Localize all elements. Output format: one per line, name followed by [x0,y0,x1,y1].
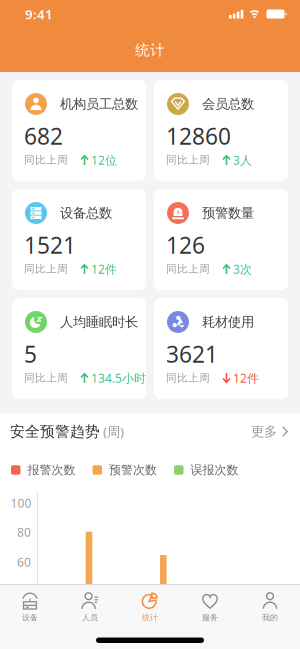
staticText: 误报次数 [190,463,238,477]
staticText: 134.5小时 [91,370,146,386]
staticText: 同比上周 [24,153,68,167]
staticText: 同比上周 [166,153,210,167]
staticText: 12860 [166,121,231,151]
staticText: 60 [17,554,31,570]
staticText: 100 [10,495,31,511]
staticText: 我的 [262,613,278,622]
staticText: 安全预警趋势 [10,422,100,440]
button[interactable]: 预警数量 [154,189,288,290]
staticText: 3次 [233,261,252,277]
staticText: 126 [166,230,205,260]
staticText: 报警次数 [27,463,75,477]
button[interactable]: 人均睡眠时长 [12,298,146,399]
staticText: 3人 [233,152,252,168]
staticText: 3621 [166,339,218,369]
staticText: 人员 [82,613,98,622]
button[interactable]: 更多 [251,423,289,440]
staticText: 耗材使用 [202,314,254,330]
staticText: 统计 [142,613,158,622]
staticText: 5 [24,339,37,369]
staticText: 1521 [24,230,76,260]
staticText: 12位 [91,152,117,168]
staticText: 设备 [22,613,38,622]
staticText: 682 [24,121,63,151]
button[interactable]: 耗材使用 [154,298,288,399]
staticText: 预警数量 [202,205,254,221]
staticText: 同比上周 [166,371,210,385]
button[interactable]: 设备 [0,585,60,629]
button[interactable]: 人员 [60,585,120,629]
staticText: 预警次数 [109,463,157,477]
staticText: 同比上周 [24,371,68,385]
staticText: 机构员工总数 [60,96,138,112]
staticText: 会员总数 [202,96,254,112]
button[interactable]: 设备总数 [12,189,146,290]
staticText: 同比上周 [24,262,68,276]
staticText: 服务 [202,613,218,622]
button[interactable]: 服务 [180,585,240,629]
button[interactable]: 会员总数 [154,80,288,181]
staticText: 设备总数 [60,205,112,221]
staticText: 12件 [91,261,117,277]
staticText: 12件 [233,370,259,386]
staticText: 80 [17,524,31,540]
staticText: 更多 [251,423,277,440]
staticText: 统计 [135,41,165,59]
button[interactable]: 统计 [120,585,180,629]
staticText: (周) [100,423,124,440]
button[interactable]: 我的 [240,585,300,629]
staticText: 人均睡眠时长 [60,314,138,330]
button[interactable]: 机构员工总数 [12,80,146,181]
staticText: 9:41 [25,5,53,23]
staticText: 同比上周 [166,262,210,276]
